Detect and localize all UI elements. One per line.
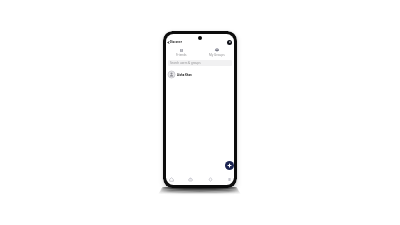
button[interactable]: Search users & groups (168, 60, 232, 66)
button[interactable]: Back (167, 41, 170, 44)
button[interactable]: Aisha Khan (168, 71, 231, 78)
staticText: Friends (176, 53, 187, 57)
button[interactable]: My Groups (209, 48, 225, 57)
staticText: My Groups (209, 53, 225, 57)
button[interactable]: Wallet (186, 173, 194, 185)
button[interactable]: More (225, 173, 233, 185)
button[interactable]: Profile (227, 40, 232, 45)
button[interactable]: Activity (206, 173, 214, 185)
staticText: Discover (170, 40, 182, 44)
staticText: Search users & groups (170, 61, 201, 65)
button[interactable]: Add friend (225, 161, 234, 170)
staticText: Aisha Khan (177, 73, 192, 76)
button[interactable]: Friends (173, 48, 189, 57)
button[interactable]: Home (167, 173, 175, 185)
